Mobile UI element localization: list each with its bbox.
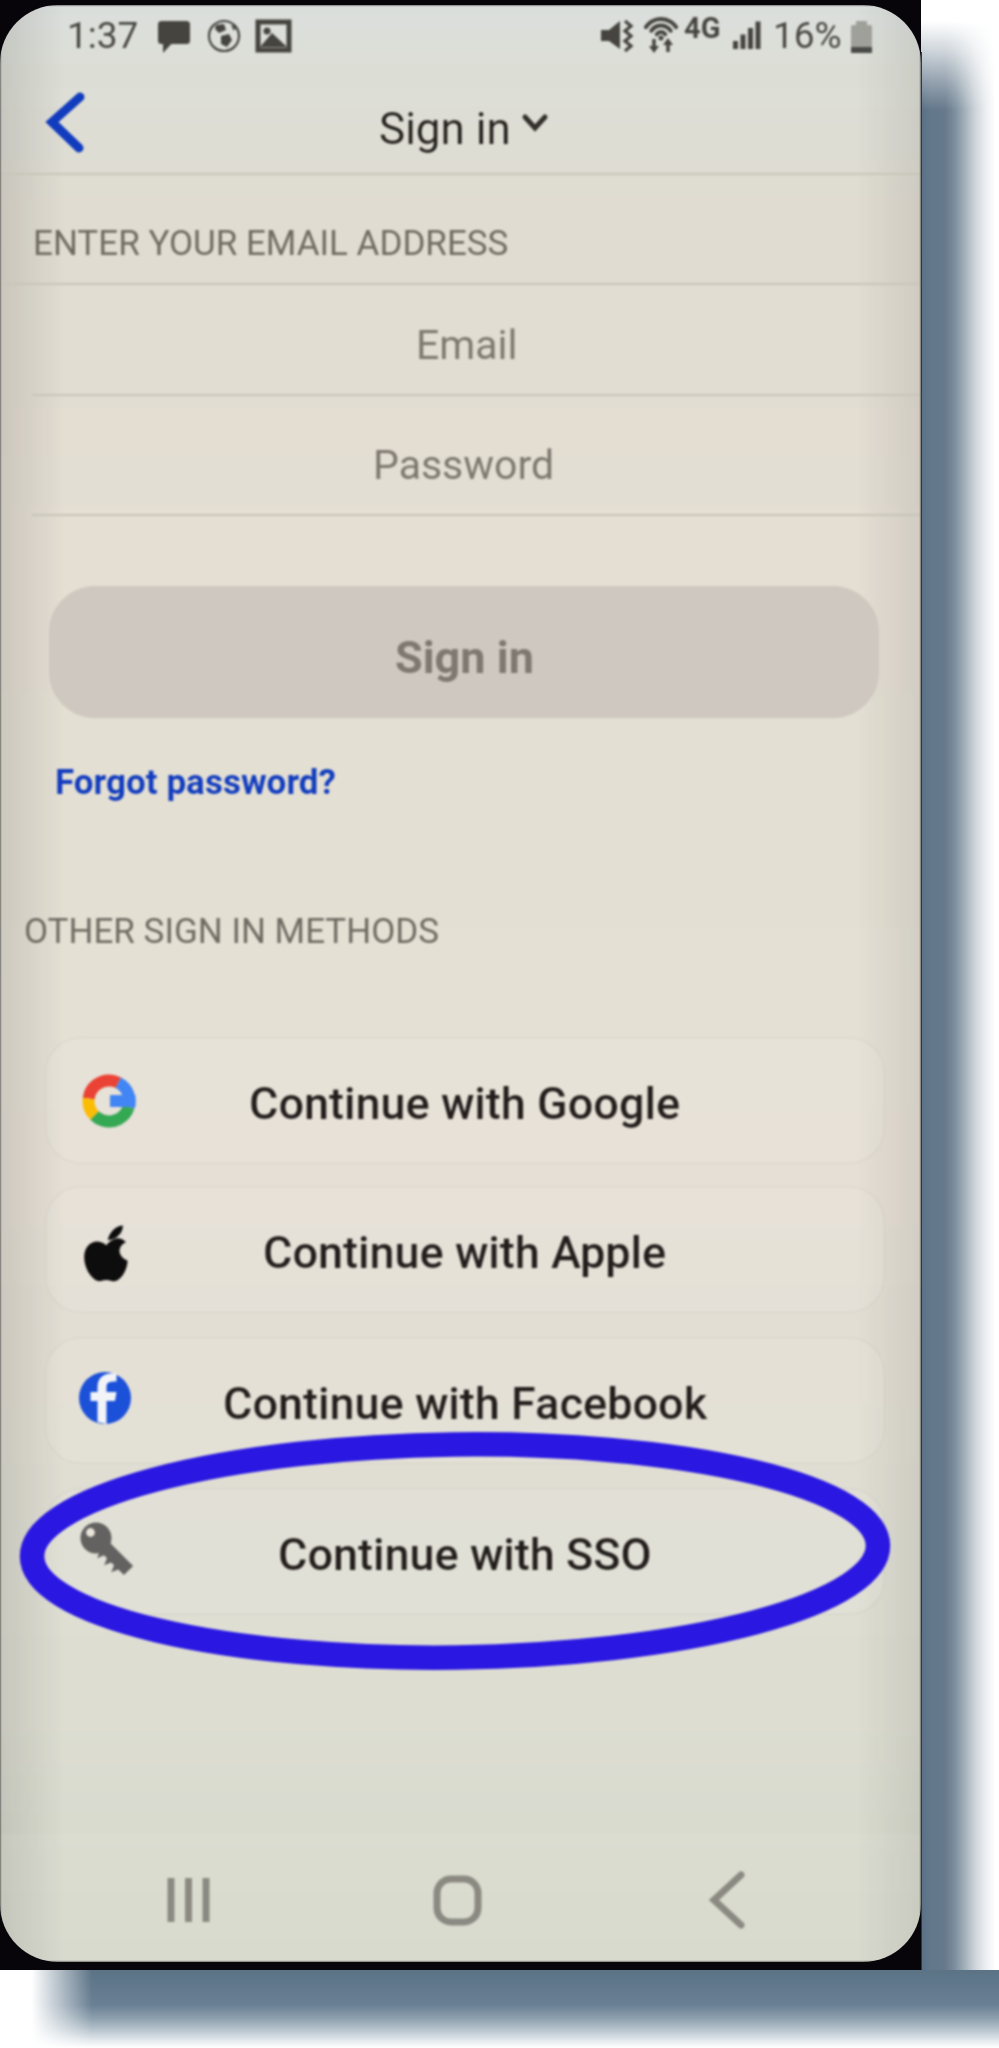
staticText: Sign in <box>379 103 511 155</box>
button[interactable]: Recent apps <box>120 1835 260 1945</box>
button[interactable]: Sign in <box>49 586 879 718</box>
staticText: 16% <box>773 14 842 57</box>
staticText: 1:37 <box>67 14 139 57</box>
button[interactable]: Home <box>388 1835 528 1945</box>
button[interactable]: Continue with SSO <box>45 1488 885 1615</box>
staticText: Continue with SSO <box>278 1528 652 1581</box>
button[interactable]: Continue with Apple <box>45 1186 885 1313</box>
button[interactable]: Sign in <box>360 98 560 160</box>
staticText: Password <box>373 441 555 489</box>
staticText: 4G <box>684 11 721 45</box>
staticText: Continue with Apple <box>263 1226 667 1279</box>
staticText: OTHER SIGN IN METHODS <box>24 911 440 952</box>
staticText: Continue with Google <box>249 1077 681 1130</box>
staticText: Continue with Facebook <box>223 1377 708 1430</box>
staticText: Forgot password? <box>55 762 337 803</box>
staticText: ENTER YOUR EMAIL ADDRESS <box>33 223 509 264</box>
button[interactable]: Back <box>658 1835 798 1945</box>
button[interactable]: Continue with Facebook <box>45 1337 885 1464</box>
staticText: Email <box>416 321 518 369</box>
staticText: Sign in <box>395 631 534 684</box>
button[interactable]: Back <box>22 84 110 172</box>
button[interactable]: Continue with Google <box>45 1037 885 1164</box>
button[interactable]: Forgot password? <box>45 750 355 814</box>
